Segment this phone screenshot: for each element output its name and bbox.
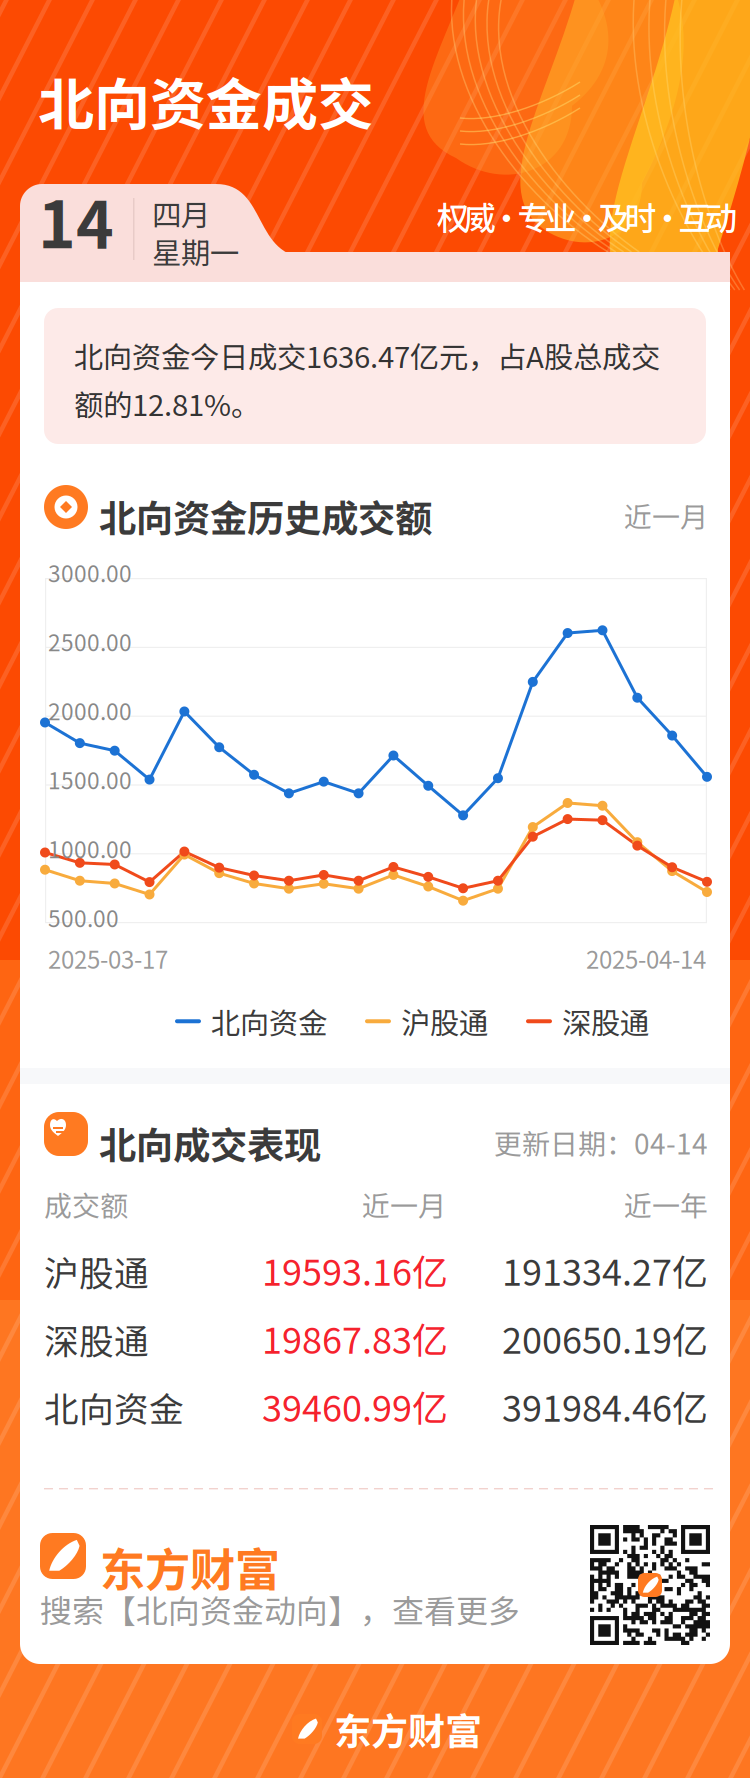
staticText: 深股通 (44, 1314, 149, 1364)
staticText: 搜索【北向资金动向】，查看更多 (40, 1586, 520, 1632)
staticText: 2000.00 (48, 694, 132, 727)
staticText: 星期一 (152, 230, 239, 272)
staticText: 沪股通 (44, 1246, 149, 1296)
staticText: 权威·专业·及时·互动 (437, 193, 737, 239)
staticText: 19867.83亿 (262, 1312, 448, 1364)
staticText: 391984.46亿 (502, 1380, 708, 1432)
staticText: 39460.99亿 (262, 1380, 448, 1432)
staticText: 近一月 (362, 1184, 446, 1224)
staticText: 四月 (152, 192, 210, 234)
staticText: 14 (38, 174, 114, 267)
staticText: 北向资金 (211, 1000, 327, 1042)
staticText: 沪股通 (401, 1000, 488, 1042)
staticText: 北向成交表现 (99, 1116, 321, 1170)
staticText: 3000.00 (48, 556, 132, 589)
staticText: 东方财富 (100, 1534, 280, 1600)
staticText: 近一年 (624, 1184, 708, 1224)
staticText: 北向资金 (44, 1382, 184, 1432)
staticText: 更新日期：04-14 (494, 1122, 708, 1162)
staticText: 2500.00 (48, 625, 132, 658)
staticText: 额的12.81%。 (74, 382, 260, 424)
staticText: 1000.00 (48, 832, 132, 865)
staticText: 19593.16亿 (262, 1244, 448, 1296)
staticText: 1500.00 (48, 763, 132, 796)
staticText: 深股通 (562, 1000, 649, 1042)
staticText: 成交额 (44, 1184, 128, 1224)
staticText: 近一月 (624, 495, 708, 535)
staticText: 北向资金历史成交额 (99, 489, 432, 543)
staticText: 2025-03-17 (48, 941, 168, 976)
staticText: 北向资金成交 (38, 60, 374, 141)
staticText: 东方财富 (334, 1702, 482, 1756)
staticText: 北向资金今日成交1636.47亿元，占A股总成交 (74, 334, 660, 376)
staticText: 191334.27亿 (502, 1244, 708, 1296)
staticText: 500.00 (48, 901, 119, 934)
staticText: 2025-04-14 (586, 941, 706, 976)
staticText: 200650.19亿 (502, 1312, 708, 1364)
